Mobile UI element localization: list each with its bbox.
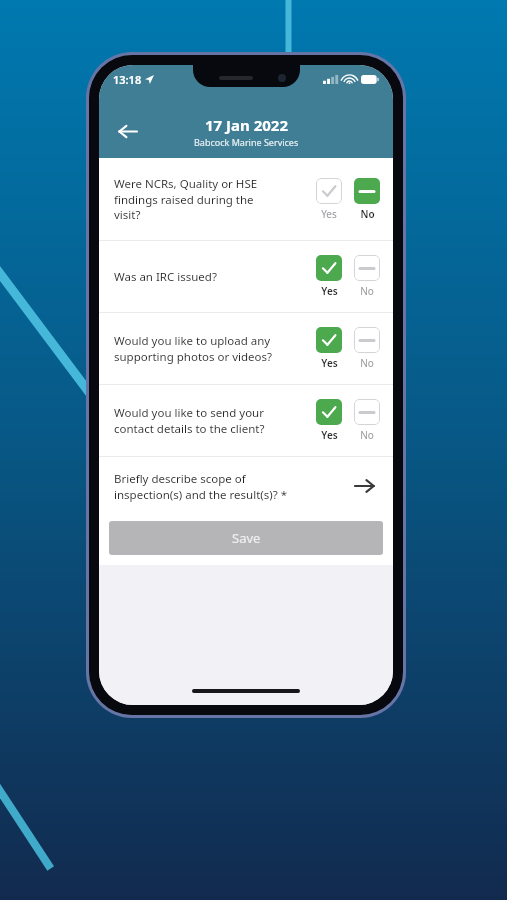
button[interactable]: No xyxy=(353,399,381,442)
staticText: Yes xyxy=(321,284,338,298)
staticText: Would you like to upload any supporting … xyxy=(114,333,273,364)
staticText: No xyxy=(360,284,374,298)
button[interactable]: Yes xyxy=(315,255,343,298)
staticText: Were NCRs, Quality or HSE findings raise… xyxy=(114,176,258,222)
staticText: 17 Jan 2022 xyxy=(205,115,288,135)
staticText: Babcock Marine Services xyxy=(194,136,299,148)
button[interactable]: Was an IRC issued? xyxy=(99,241,393,312)
button[interactable]: Were NCRs, Quality or HSE findings raise… xyxy=(99,158,393,240)
button[interactable]: Save xyxy=(109,521,383,555)
staticText: 13:18 xyxy=(113,72,142,87)
button[interactable]: Yes xyxy=(315,399,343,442)
button[interactable]: Briefly describe scope of inspection(s) … xyxy=(99,457,393,515)
staticText: Would you like to send your contact deta… xyxy=(114,405,265,436)
button[interactable]: No xyxy=(353,178,381,221)
staticText: Save xyxy=(232,529,261,547)
staticText: Yes xyxy=(321,428,338,442)
button[interactable]: Back xyxy=(107,111,147,151)
button[interactable]: Would you like to upload any supporting … xyxy=(99,313,393,384)
button[interactable]: No xyxy=(353,327,381,370)
button[interactable]: Would you like to send your contact deta… xyxy=(99,385,393,456)
staticText: Yes xyxy=(321,356,338,370)
staticText: No xyxy=(360,428,374,442)
staticText: Yes xyxy=(321,207,337,221)
button[interactable]: Yes xyxy=(315,327,343,370)
button[interactable]: No xyxy=(353,255,381,298)
staticText: Briefly describe scope of inspection(s) … xyxy=(114,471,288,502)
staticText: No xyxy=(360,207,375,221)
button[interactable]: Yes xyxy=(315,178,343,221)
staticText: Was an IRC issued? xyxy=(114,269,217,285)
staticText: No xyxy=(360,356,374,370)
